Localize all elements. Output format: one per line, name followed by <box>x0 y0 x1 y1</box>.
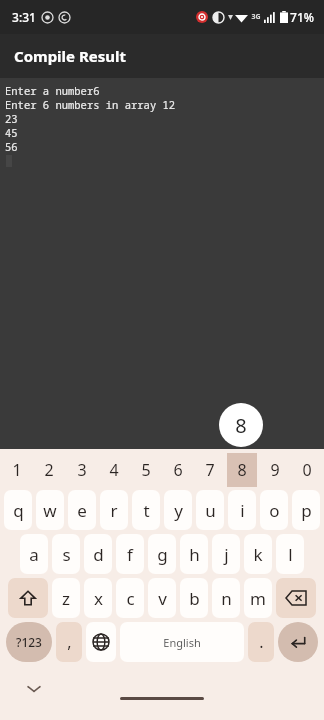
staticText: w <box>43 499 57 522</box>
button[interactable]: 9 <box>260 453 290 487</box>
staticText: l <box>288 543 293 566</box>
staticText: p <box>301 499 312 522</box>
button[interactable]: m <box>244 578 272 618</box>
staticText: 56 <box>5 140 18 154</box>
button[interactable]: 3 <box>67 453 97 487</box>
staticText: , <box>67 631 72 653</box>
button[interactable]: l <box>276 534 304 574</box>
staticText: r <box>110 499 118 522</box>
staticText: 71% <box>290 9 314 25</box>
button[interactable]: Enter <box>278 622 318 662</box>
staticText: Enter 6 numbers in array 12 <box>5 98 176 112</box>
staticText: u <box>205 499 216 522</box>
button[interactable]: b <box>180 578 208 618</box>
staticText: 23 <box>5 112 18 126</box>
staticText: f <box>127 543 133 566</box>
staticText: e <box>77 499 87 522</box>
button[interactable]: 0 <box>292 453 322 487</box>
staticText: 3 <box>77 459 87 481</box>
button[interactable]: k <box>244 534 272 574</box>
staticText: 4 <box>109 459 119 481</box>
staticText: English <box>163 635 201 650</box>
staticText: 5 <box>141 459 151 481</box>
button[interactable]: d <box>84 534 112 574</box>
button[interactable]: , <box>56 622 82 662</box>
button[interactable]: ?123 <box>6 622 52 662</box>
button[interactable]: w <box>36 490 64 530</box>
staticText: z <box>62 587 70 610</box>
button[interactable]: 5 <box>131 453 161 487</box>
button[interactable]: Backspace <box>276 578 316 618</box>
staticText: a <box>29 543 39 566</box>
button[interactable]: Change language <box>86 622 116 662</box>
button[interactable]: English <box>120 622 244 662</box>
button[interactable]: 1 <box>2 453 32 487</box>
staticText: . <box>259 631 264 653</box>
button[interactable]: x <box>84 578 112 618</box>
button[interactable]: c <box>116 578 144 618</box>
staticText: x <box>94 587 103 610</box>
staticText: 7 <box>205 459 215 481</box>
button[interactable]: Hide keyboard <box>22 677 46 701</box>
staticText: ?123 <box>16 634 42 650</box>
button[interactable]: o <box>260 490 288 530</box>
staticText: y <box>174 499 183 522</box>
button[interactable]: 2 <box>34 453 64 487</box>
staticText: 8 <box>237 459 247 481</box>
staticText: q <box>13 499 24 522</box>
button[interactable]: Shift <box>8 578 48 618</box>
staticText: h <box>189 543 200 566</box>
staticText: Compile Result <box>14 46 126 66</box>
button[interactable]: a <box>20 534 48 574</box>
staticText: 45 <box>5 126 18 140</box>
staticText: 9 <box>270 459 280 481</box>
staticText: b <box>189 587 200 610</box>
staticText: k <box>253 543 263 566</box>
staticText: d <box>93 543 104 566</box>
button[interactable]: 7 <box>195 453 225 487</box>
staticText: 6 <box>173 459 183 481</box>
button[interactable]: n <box>212 578 240 618</box>
button[interactable]: r <box>100 490 128 530</box>
button[interactable]: s <box>52 534 80 574</box>
button[interactable]: y <box>164 490 192 530</box>
button[interactable]: z <box>52 578 80 618</box>
button[interactable]: i <box>228 490 256 530</box>
button[interactable]: f <box>116 534 144 574</box>
staticText: 0 <box>302 459 312 481</box>
staticText: 1 <box>12 459 22 481</box>
button[interactable]: e <box>68 490 96 530</box>
button[interactable]: h <box>180 534 208 574</box>
staticText: m <box>250 587 266 610</box>
staticText: v <box>158 587 167 610</box>
staticText: g <box>157 543 168 566</box>
staticText: 3:31 <box>12 9 36 25</box>
staticText: s <box>62 543 71 566</box>
button[interactable]: j <box>212 534 240 574</box>
button[interactable]: 6 <box>163 453 193 487</box>
staticText: i <box>240 499 245 522</box>
staticText: o <box>269 499 280 522</box>
staticText: 8 <box>235 412 247 439</box>
button[interactable]: t <box>132 490 160 530</box>
staticText: j <box>224 543 229 566</box>
staticText: 3G <box>251 12 261 22</box>
button[interactable]: g <box>148 534 176 574</box>
button[interactable]: 4 <box>99 453 129 487</box>
staticText: c <box>126 587 135 610</box>
button[interactable]: v <box>148 578 176 618</box>
button[interactable]: q <box>4 490 32 530</box>
button[interactable]: . <box>248 622 274 662</box>
staticText: t <box>143 499 150 522</box>
staticText: n <box>221 587 232 610</box>
button[interactable]: u <box>196 490 224 530</box>
button[interactable]: p <box>292 490 320 530</box>
button[interactable]: 8 <box>227 453 257 487</box>
staticText: Enter a number6 <box>5 84 100 98</box>
staticText: 2 <box>44 459 54 481</box>
